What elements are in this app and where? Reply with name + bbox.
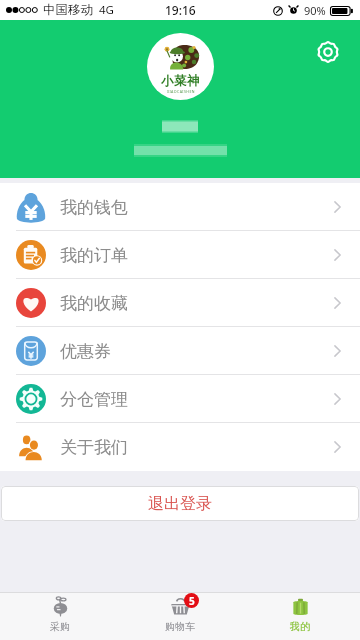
- staticText: 我的钱包: [60, 197, 128, 218]
- staticText: 90%: [304, 3, 326, 18]
- staticText: 中国移动: [43, 2, 93, 18]
- staticText: 5: [189, 594, 195, 608]
- button[interactable]: 我的订单: [0, 231, 360, 279]
- staticText: 关于我们: [60, 437, 128, 458]
- button[interactable]: 我的钱包: [0, 183, 360, 231]
- staticText: 购物车: [165, 620, 195, 633]
- staticText: XIAOCAISHEN: [167, 89, 195, 94]
- button[interactable]: 优惠券: [0, 327, 360, 375]
- staticText: 4G: [99, 2, 114, 18]
- button[interactable]: 我的: [240, 593, 360, 640]
- staticText: 分仓管理: [60, 389, 128, 410]
- button[interactable]: 分仓管理: [0, 375, 360, 423]
- staticText: 退出登录: [148, 494, 212, 514]
- button[interactable]: 我的收藏: [0, 279, 360, 327]
- staticText: 我的订单: [60, 245, 128, 266]
- staticText: 优惠券: [60, 341, 111, 362]
- staticText: 19:16: [165, 2, 196, 18]
- button[interactable]: 关于我们: [0, 423, 360, 471]
- button[interactable]: Settings: [314, 38, 342, 66]
- staticText: 采购: [50, 620, 70, 633]
- staticText: 我的: [290, 620, 310, 633]
- staticText: 小菜神: [161, 73, 201, 89]
- button[interactable]: 退出登录: [1, 486, 359, 521]
- button[interactable]: 5: [120, 593, 240, 640]
- staticText: 我的收藏: [60, 293, 128, 314]
- button[interactable]: 采购: [0, 593, 120, 640]
